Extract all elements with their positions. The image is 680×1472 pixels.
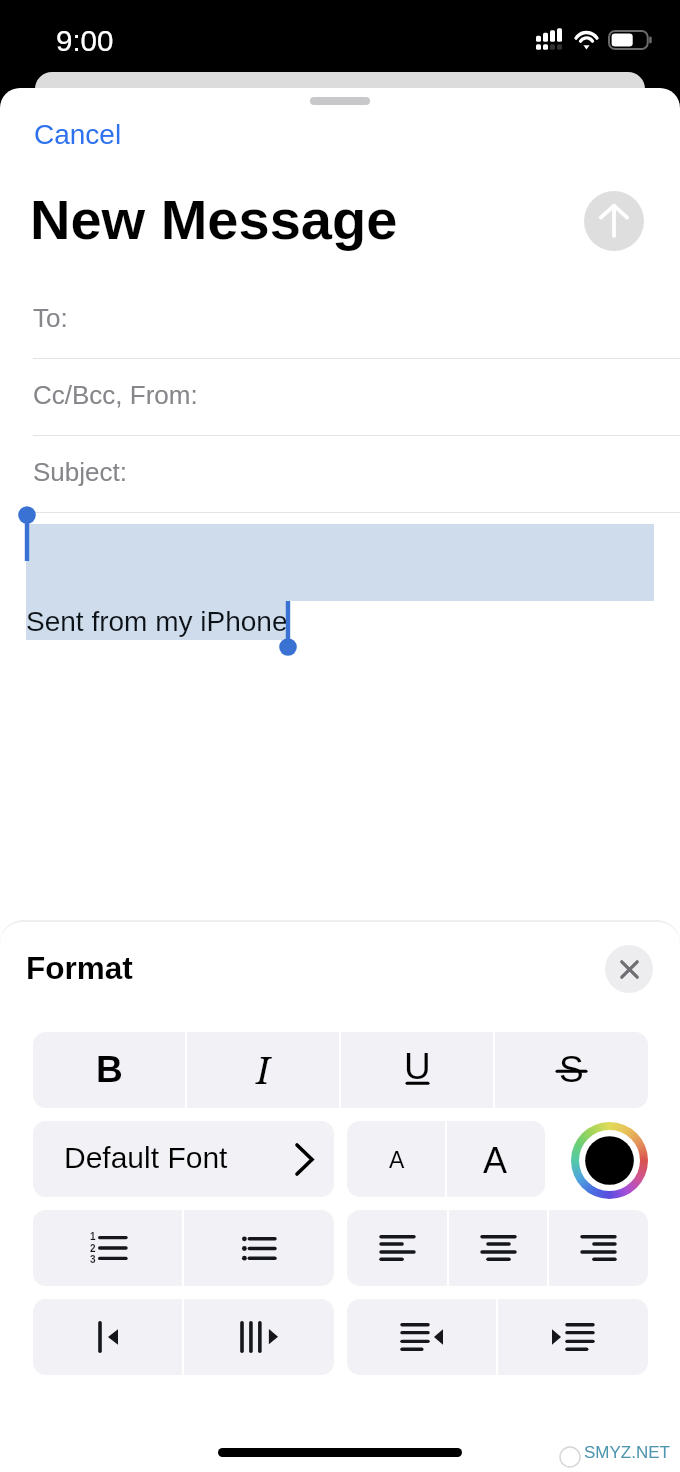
button[interactable]: Default Font: [33, 1121, 334, 1197]
staticText: Format: [26, 950, 133, 985]
button[interactable]: [548, 1210, 648, 1286]
button[interactable]: [347, 1299, 497, 1375]
staticText: A: [389, 1147, 405, 1173]
button[interactable]: [347, 1210, 448, 1286]
button[interactable]: [183, 1299, 334, 1375]
staticText: 1: [90, 1231, 96, 1242]
staticText: I: [256, 1043, 270, 1095]
button[interactable]: [183, 1210, 334, 1286]
staticText: To:: [33, 303, 68, 332]
button[interactable]: [497, 1299, 648, 1375]
button[interactable]: B: [33, 1032, 186, 1108]
staticText: Subject:: [33, 457, 127, 486]
button[interactable]: U: [340, 1032, 494, 1108]
button[interactable]: Text colour: [571, 1122, 648, 1199]
button[interactable]: 1: [33, 1210, 183, 1286]
staticText: S: [559, 1049, 584, 1090]
button[interactable]: A: [347, 1121, 446, 1197]
staticText: Cancel: [34, 119, 122, 150]
staticText: SMYZ.NET: [584, 1443, 670, 1462]
button[interactable]: [448, 1210, 548, 1286]
staticText: Sent from my iPhone: [26, 606, 288, 637]
staticText: A: [483, 1140, 508, 1180]
button[interactable]: Close Format: [605, 945, 653, 993]
staticText: Default Font: [64, 1141, 228, 1175]
button[interactable]: Cancel: [34, 119, 122, 150]
staticText: 2: [90, 1243, 96, 1254]
button[interactable]: To:: [0, 282, 680, 359]
staticText: Cc/Bcc, From:: [33, 380, 198, 409]
staticText: 9:00: [56, 24, 114, 57]
button[interactable]: Cc/Bcc, From:: [0, 359, 680, 436]
staticText: 3: [90, 1254, 96, 1265]
staticText: New Message: [30, 188, 398, 251]
staticText: B: [96, 1049, 123, 1090]
button[interactable]: I: [186, 1032, 340, 1108]
button[interactable]: Send: [584, 191, 644, 251]
button[interactable]: A: [446, 1121, 545, 1197]
staticText: U: [404, 1046, 431, 1087]
button[interactable]: S: [494, 1032, 648, 1108]
button[interactable]: Subject:: [0, 436, 680, 513]
button[interactable]: [33, 1299, 183, 1375]
